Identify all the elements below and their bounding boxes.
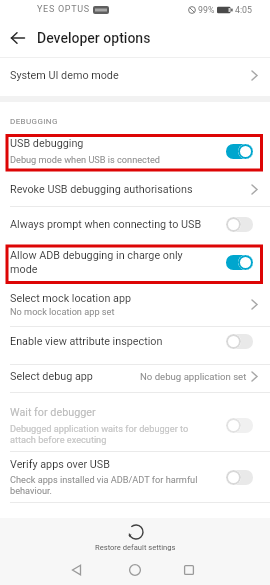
button[interactable] — [226, 144, 253, 159]
staticText: Select mock location app — [10, 292, 132, 305]
button[interactable] — [226, 217, 253, 232]
staticText: 4:05 — [235, 5, 252, 15]
staticText: System UI demo mode — [10, 69, 119, 82]
staticText: USB debugging — [10, 137, 84, 150]
staticText: Debug mode when USB is connected — [10, 154, 160, 165]
button[interactable]: System UI demo mode — [0, 58, 270, 96]
staticText: DEBUGGING — [10, 117, 58, 126]
staticText: Check apps installed via ADB/ADT for har… — [10, 474, 198, 496]
button[interactable]: Enable view attribute inspection — [0, 327, 270, 364]
button[interactable]: Select debug app — [0, 365, 270, 392]
staticText: 99% — [198, 5, 215, 15]
staticText: Restore default settings — [95, 543, 176, 552]
staticText: Verify apps over USB — [10, 458, 110, 471]
button[interactable]: Restore default settings — [95, 518, 176, 552]
button[interactable] — [226, 418, 253, 433]
button[interactable] — [226, 470, 253, 485]
button[interactable] — [169, 555, 209, 585]
staticText: Allow ADB debugging in charge only mode — [10, 249, 183, 276]
staticText: Developer options — [37, 30, 151, 46]
button[interactable] — [56, 555, 96, 585]
button[interactable] — [115, 555, 155, 585]
staticText: Always prompt when connecting to USB — [10, 218, 202, 231]
button[interactable] — [226, 255, 253, 270]
staticText: Revoke USB debugging authorisations — [10, 183, 193, 196]
button[interactable]: Revoke USB debugging authorisations — [0, 172, 270, 206]
staticText: No mock location app set — [10, 306, 115, 317]
staticText: Select debug app — [10, 370, 93, 383]
button[interactable]: Select mock location app — [0, 287, 270, 326]
button[interactable]: Allow ADB debugging in charge only mode — [0, 241, 270, 287]
staticText: Enable view attribute inspection — [10, 335, 163, 348]
button[interactable]: Verify apps over USB — [0, 452, 270, 502]
staticText: Debugged application waits for debugger … — [10, 423, 189, 445]
staticText: YES OPTUS — [37, 4, 90, 15]
button[interactable] — [226, 334, 253, 349]
button[interactable]: Wait for debugger — [0, 393, 270, 451]
staticText: Wait for debugger — [10, 406, 96, 419]
button[interactable] — [0, 19, 36, 57]
button[interactable]: USB debugging — [0, 134, 270, 172]
staticText: No debug application set — [140, 371, 247, 382]
button[interactable]: Always prompt when connecting to USB — [0, 207, 270, 241]
